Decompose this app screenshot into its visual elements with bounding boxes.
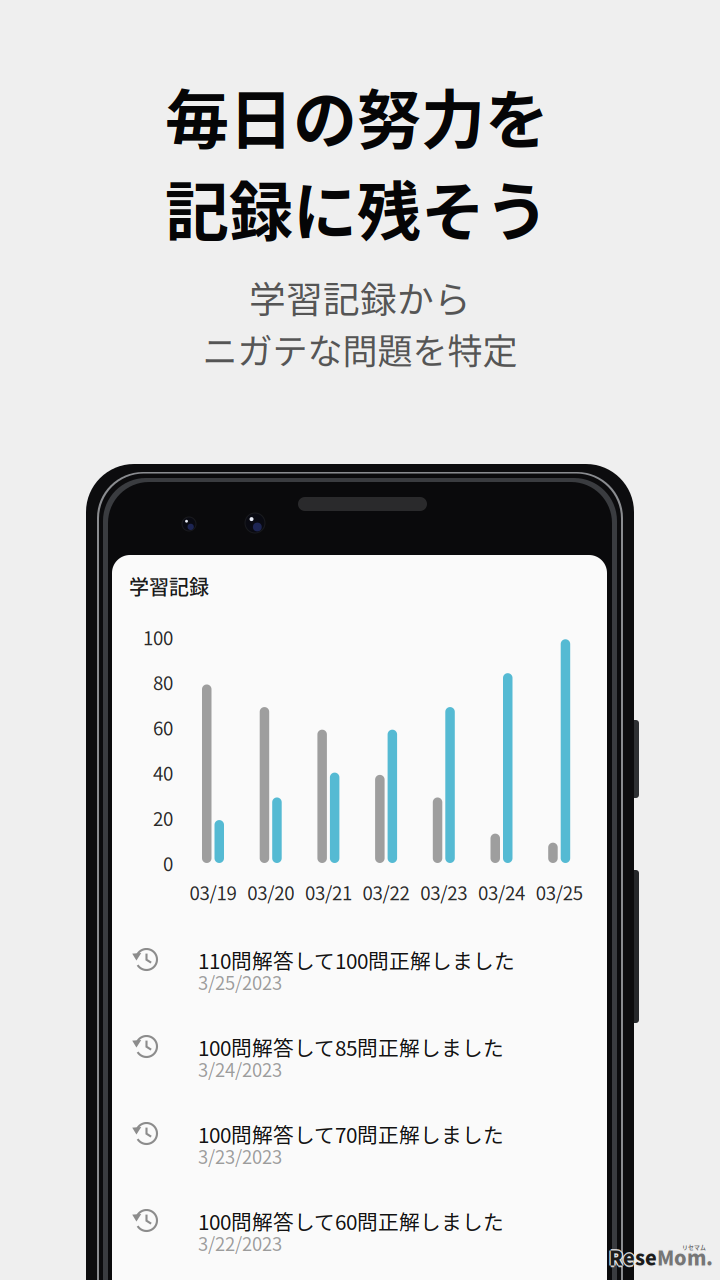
staticText: 3/25/2023 bbox=[198, 969, 282, 995]
staticText: 学習記録 bbox=[129, 571, 209, 600]
staticText: Rese bbox=[609, 1243, 657, 1271]
staticText: Rese bbox=[609, 1241, 657, 1270]
staticText: 40 bbox=[153, 759, 173, 786]
button[interactable]: 110問解答して100問正解しました bbox=[132, 947, 532, 993]
staticText: 100問解答して60問正解しました bbox=[198, 1206, 504, 1236]
staticText: 03/20 bbox=[247, 878, 294, 905]
staticText: 3/22/2023 bbox=[198, 1230, 282, 1256]
staticText: 20 bbox=[153, 804, 173, 831]
staticText: 3/24/2023 bbox=[198, 1056, 282, 1082]
staticText: 03/25 bbox=[536, 878, 583, 905]
staticText: 110問解答して100問正解しました bbox=[198, 945, 515, 975]
staticText: 03/24 bbox=[478, 878, 525, 905]
button[interactable]: 100問解答して70問正解しました bbox=[132, 1121, 532, 1167]
staticText: Rese bbox=[607, 1243, 655, 1271]
button[interactable]: 100問解答して60問正解しました bbox=[132, 1208, 532, 1254]
staticText: Rese bbox=[609, 1244, 657, 1273]
staticText: 03/21 bbox=[305, 878, 352, 905]
staticText: Mom. bbox=[659, 1243, 715, 1271]
staticText: リセマム bbox=[682, 1243, 706, 1251]
staticText: 記録に残そう bbox=[165, 161, 549, 253]
button[interactable]: 100問解答して85問正解しました bbox=[132, 1034, 532, 1080]
staticText: Mom. bbox=[657, 1244, 713, 1273]
staticText: 学習記録から bbox=[249, 270, 471, 324]
staticText: 80 bbox=[153, 669, 173, 696]
staticText: ニガテな問題を特定 bbox=[202, 324, 517, 374]
staticText: Mom. bbox=[657, 1241, 713, 1270]
staticText: 100 bbox=[143, 623, 173, 650]
staticText: 100問解答して70問正解しました bbox=[198, 1119, 504, 1149]
staticText: 60 bbox=[153, 714, 173, 741]
staticText: Mom. bbox=[655, 1243, 711, 1271]
staticText: 3/23/2023 bbox=[198, 1143, 282, 1169]
staticText: 0 bbox=[163, 849, 173, 876]
staticText: Mom. bbox=[657, 1243, 713, 1271]
staticText: 03/23 bbox=[420, 878, 467, 905]
staticText: 03/19 bbox=[189, 878, 236, 905]
staticText: 毎日の努力を bbox=[165, 69, 549, 161]
staticText: 03/22 bbox=[363, 878, 410, 905]
staticText: 100問解答して85問正解しました bbox=[198, 1032, 504, 1062]
staticText: Rese bbox=[611, 1243, 659, 1271]
